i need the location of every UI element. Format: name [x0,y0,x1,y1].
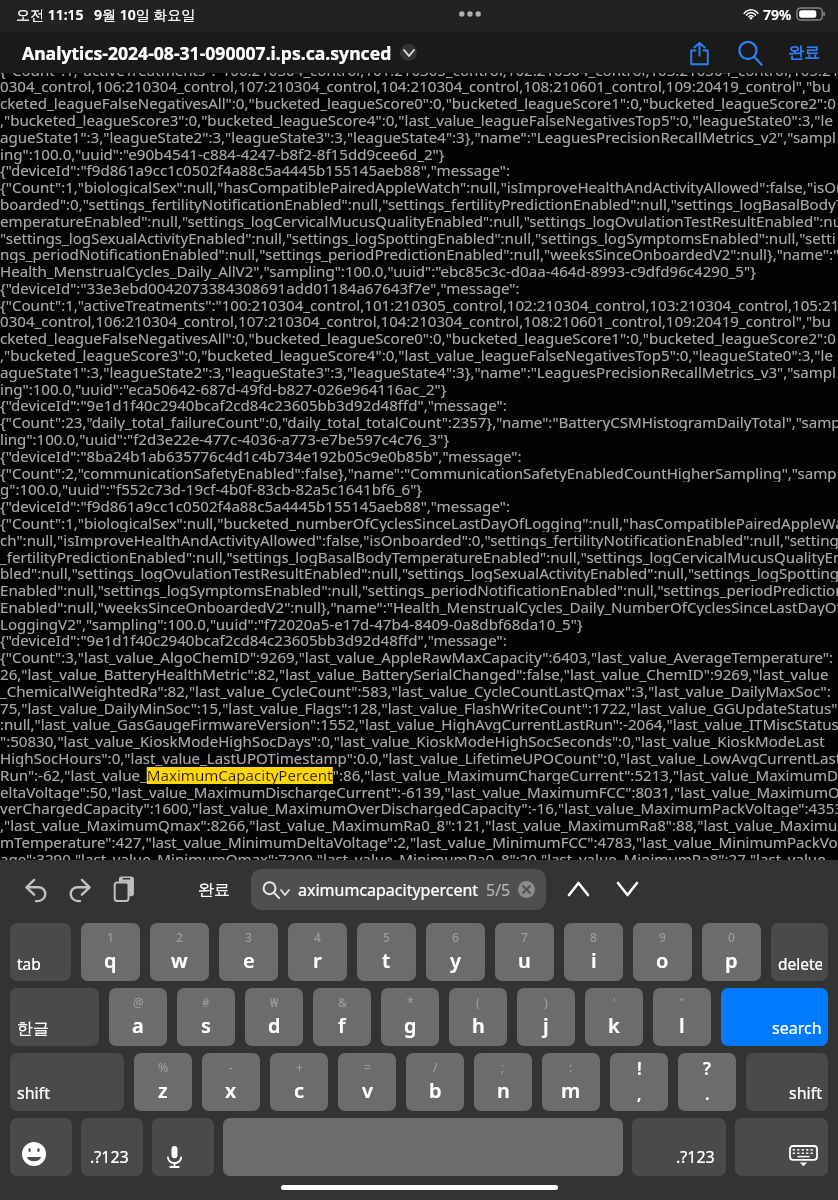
button[interactable]: .?123 [81,1118,143,1176]
button[interactable]: delete [771,923,828,981]
button[interactable]: 1 [81,923,140,981]
staticText: o [656,947,669,974]
staticText: mTemperature":427,"last_value_MinimumDel… [0,834,838,851]
button[interactable]: ; [474,1053,532,1111]
button[interactable]: Emoji [10,1118,72,1176]
staticText: e [243,947,255,974]
staticText: LoggingV2","sampling":100.0,"uuid":"f720… [0,616,583,633]
staticText: 1 [107,929,114,945]
button[interactable]: shift [746,1053,828,1111]
staticText: % [158,1059,169,1075]
staticText: 3 [245,929,252,945]
button[interactable]: Share [679,33,719,73]
button[interactable]: / [406,1053,464,1111]
button[interactable]: Dictation [152,1118,214,1176]
button[interactable]: ₩ [245,988,303,1046]
button[interactable]: ( [449,988,507,1046]
staticText: bled":null,"settings_logOvulationTestRes… [0,565,838,582]
staticText: 2 [176,929,183,945]
button[interactable]: Redo [61,872,97,908]
staticText: 7 [521,929,528,945]
staticText: z [158,1077,168,1104]
staticText: h [472,1012,485,1039]
staticText: {"deviceId":"f9d861a9cc1c0502f4a88c5a444… [0,162,510,179]
staticText: j [543,1012,549,1039]
button[interactable]: + [270,1053,328,1111]
button[interactable]: * [381,988,439,1046]
button[interactable]: 3 [219,923,278,981]
button[interactable]: % [134,1053,192,1111]
button[interactable]: 0 [702,923,761,981]
staticText: 26,"last_value_BatteryHealthMetric":82,"… [0,666,829,683]
staticText: i [591,947,597,974]
button[interactable]: Search [730,33,770,73]
staticText: agueState1":3,"leagueState2":3,"leagueSt… [0,364,836,381]
staticText: search [772,1017,822,1039]
button[interactable]: aximumcapacitypercent [251,869,546,910]
staticText: l [679,1012,685,1039]
staticText: : [569,1059,573,1075]
button[interactable]: 8 [564,923,623,981]
staticText: x [225,1077,237,1104]
button[interactable]: # [177,988,235,1046]
button[interactable]: 완료 [780,43,828,63]
staticText: r [313,947,322,974]
button[interactable]: ) [517,988,575,1046]
button[interactable]: 완료 [192,872,236,908]
button[interactable]: Clear search [518,881,535,898]
button[interactable]: Undo [19,872,55,908]
staticText: boarded":0,"settings_fertilityNotificati… [0,196,838,213]
staticText: ? [703,1057,711,1080]
button[interactable]: 4 [288,923,347,981]
staticText: 4 [314,929,321,945]
staticText: - [229,1059,233,1075]
staticText: Health_MenstrualCycles_Daily_AllV2","sam… [0,263,756,280]
button[interactable]: shift [10,1053,124,1111]
button[interactable]: - [202,1053,260,1111]
button[interactable]: Hide keyboard [735,1118,828,1176]
staticText: = [364,1059,371,1075]
staticText: 8 [590,929,597,945]
button[interactable]: search [721,988,828,1046]
staticText: ,"bucketed_leagueScore3":0,"bucketed_lea… [0,112,833,129]
staticText: p [725,947,738,974]
staticText: w [171,947,188,974]
button[interactable]: & [313,988,371,1046]
button[interactable]: 2 [150,923,209,981]
staticText: {"deviceId":"33e3ebd0042073384308691add0… [0,280,520,297]
staticText: verChargedCapacity":1600,"last_value_Max… [0,800,838,817]
button[interactable]: ' [585,988,643,1046]
staticText: n [497,1077,510,1104]
staticText: 9 [659,929,666,945]
staticText: 0304_control,106:210304_control,107:2103… [0,313,831,330]
button[interactable]: " [653,988,711,1046]
staticText: {"Count":23,"daily_total_failureCount":0… [0,414,838,431]
button[interactable]: : [542,1053,600,1111]
staticText: v [362,1077,373,1104]
button[interactable]: Document options [400,44,417,61]
button[interactable]: 9 [633,923,692,981]
button[interactable]: ? [678,1053,736,1111]
staticText: ing":100.0,"uuid":"e90b4541-c884-4247-b8… [0,146,445,163]
button[interactable]: = [338,1053,396,1111]
button[interactable]: tab [10,923,71,981]
button[interactable]: @ [109,988,167,1046]
staticText: @ [133,994,144,1010]
button[interactable]: 한글 [10,988,99,1046]
button[interactable]: ! [610,1053,668,1111]
staticText: ing":100.0,"uuid":"eca50642-687d-49fd-b8… [0,381,447,398]
button[interactable]: Previous result [560,871,596,907]
button[interactable]: 5 [357,923,416,981]
button[interactable]: 7 [495,923,554,981]
staticText: y [450,947,461,974]
button[interactable]: 6 [426,923,485,981]
button[interactable]: Paste [106,871,142,907]
staticText: cketed_leagueFalseNegativesAll":0,"bucke… [0,330,836,347]
button[interactable]: .?123 [632,1118,726,1176]
button[interactable]: Next result [609,871,645,907]
staticText: # [202,994,210,1010]
staticText: shift [789,1082,822,1104]
staticText: . [705,1083,710,1105]
staticText: / [433,1059,438,1075]
